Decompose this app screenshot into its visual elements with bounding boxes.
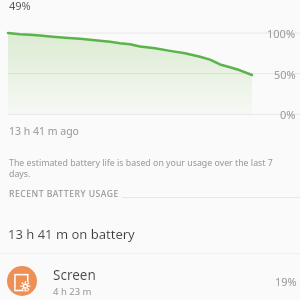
staticText: 50% bbox=[274, 67, 296, 82]
staticText: 0% bbox=[280, 107, 296, 122]
other: Screen battery usage bbox=[7, 266, 37, 296]
button[interactable]: Screen battery usage bbox=[0, 253, 300, 300]
staticText: 4 h 23 m bbox=[53, 285, 92, 298]
staticText: RECENT BATTERY USAGE bbox=[9, 188, 119, 200]
staticText: 13 h 41 m on battery bbox=[8, 225, 135, 243]
staticText: Screen bbox=[53, 266, 96, 284]
staticText: 19% bbox=[275, 274, 297, 289]
staticText: 49% bbox=[9, 0, 31, 13]
staticText: The estimated battery life is based on y… bbox=[9, 157, 277, 180]
staticText: 100% bbox=[267, 26, 296, 41]
staticText: 13 h 41 m ago bbox=[9, 124, 79, 138]
